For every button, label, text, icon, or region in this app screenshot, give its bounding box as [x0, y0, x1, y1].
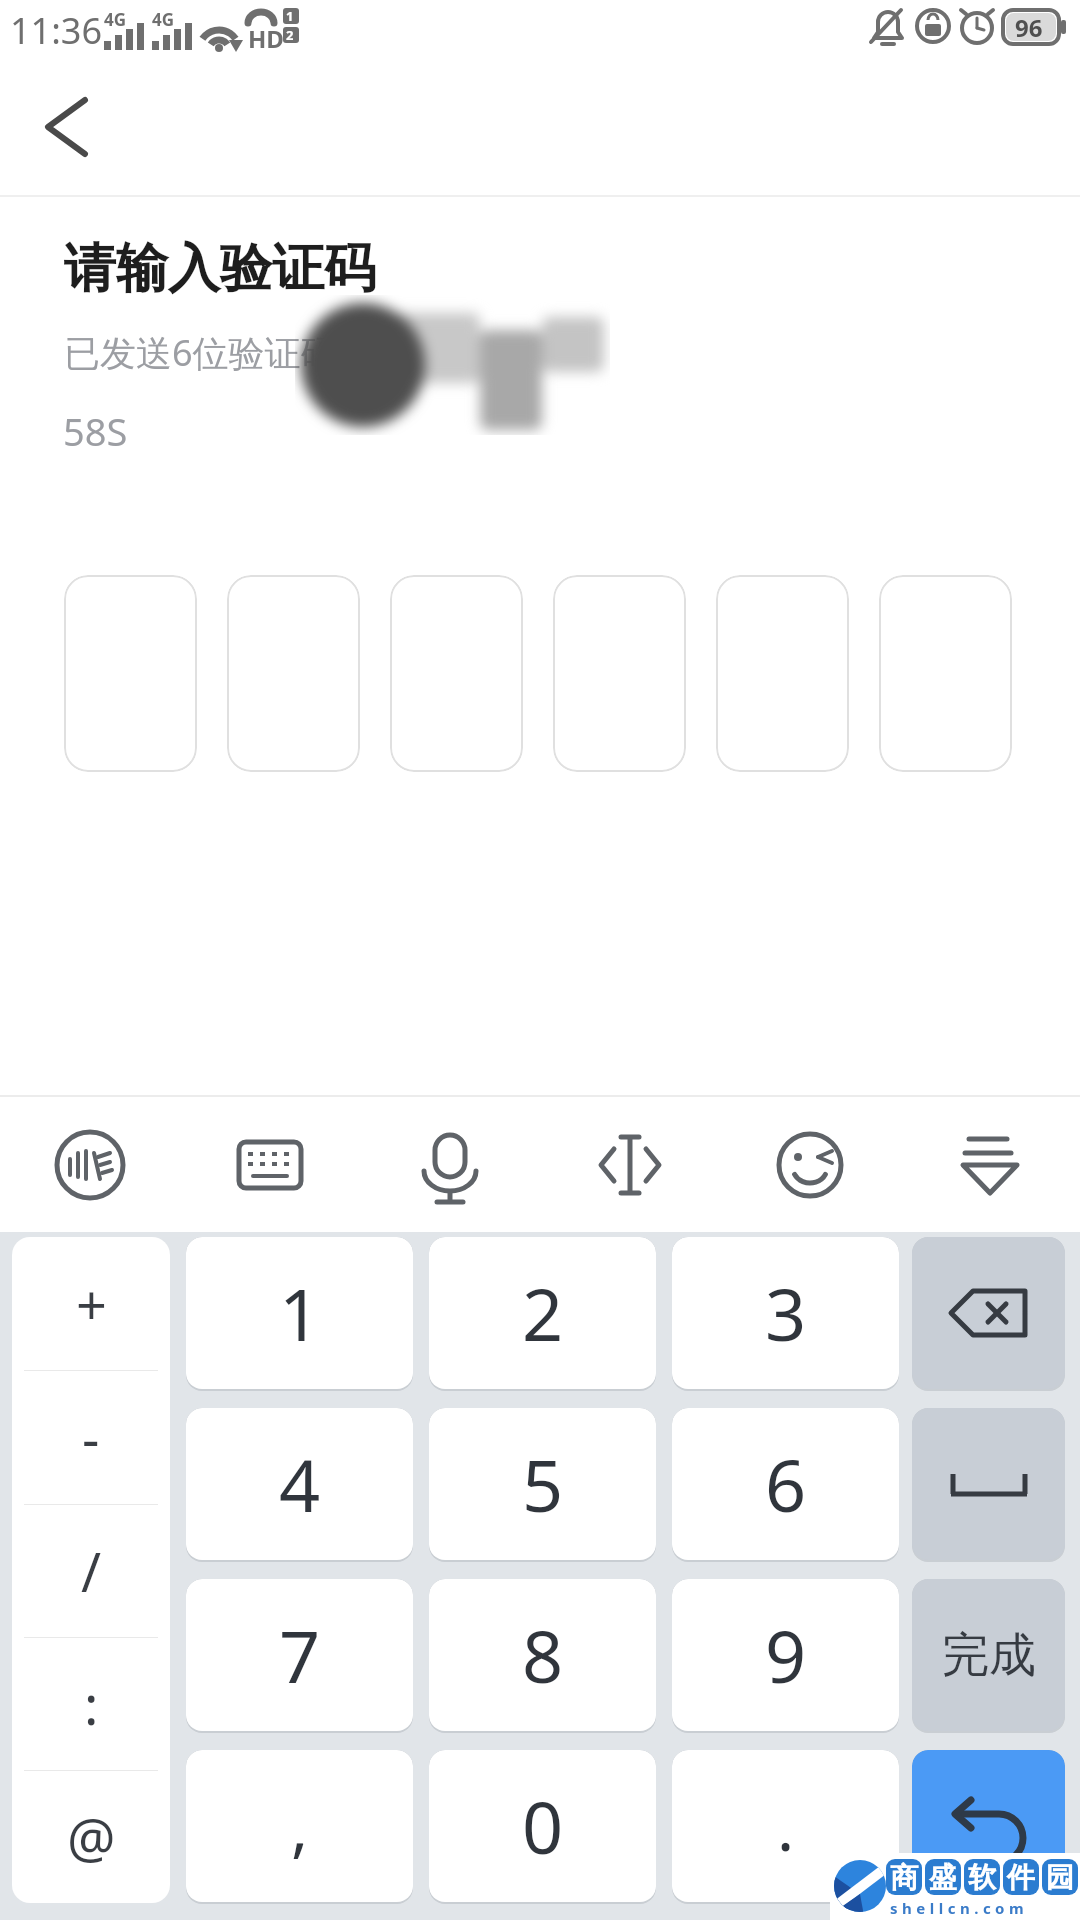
staticText: +	[76, 1267, 107, 1341]
staticText: 2	[522, 1264, 564, 1362]
staticText: 9	[765, 1606, 807, 1704]
button[interactable]: 4	[186, 1408, 413, 1560]
staticText: 5	[522, 1435, 564, 1533]
staticText: 4G	[152, 8, 175, 31]
staticText: 0	[522, 1777, 564, 1875]
button[interactable]	[720, 1097, 900, 1232]
staticText: 58S	[63, 405, 128, 457]
button[interactable]: :	[12, 1638, 170, 1770]
staticText: 完成	[942, 1626, 1036, 1685]
staticText: -	[82, 1401, 100, 1475]
button[interactable]	[716, 575, 849, 772]
button[interactable]: /	[12, 1505, 170, 1637]
staticText: 商	[890, 1860, 918, 1895]
staticText: 4G	[104, 8, 127, 31]
button[interactable]	[540, 1097, 720, 1232]
staticText: 1	[286, 7, 294, 25]
staticText: 2	[286, 26, 294, 44]
button[interactable]: 8	[429, 1579, 656, 1731]
button[interactable]	[879, 575, 1012, 772]
button[interactable]	[180, 1097, 360, 1232]
staticText: 96	[1015, 11, 1043, 44]
staticText: HD	[248, 22, 284, 55]
button[interactable]	[64, 575, 197, 772]
button[interactable]	[360, 1097, 540, 1232]
button[interactable]: 6	[672, 1408, 899, 1560]
staticText: 4	[279, 1435, 321, 1533]
staticText: :	[84, 1667, 99, 1741]
staticText: @	[67, 1800, 116, 1874]
staticText: 8	[522, 1606, 564, 1704]
staticText: 园	[1046, 1860, 1074, 1895]
button[interactable]: 3	[672, 1237, 899, 1389]
staticText: 已发送6位验证码至	[64, 328, 373, 377]
staticText: 6	[765, 1435, 807, 1533]
staticText: 3	[765, 1264, 807, 1362]
staticText: 软	[968, 1860, 996, 1895]
button[interactable]: @	[12, 1771, 170, 1903]
button[interactable]	[227, 575, 360, 772]
staticText: .	[777, 1783, 795, 1870]
staticText: 1	[279, 1264, 321, 1362]
button[interactable]	[912, 1237, 1065, 1389]
staticText: 件	[1007, 1860, 1035, 1895]
button[interactable]: 5	[429, 1408, 656, 1560]
button[interactable]: 1	[186, 1237, 413, 1389]
button[interactable]	[0, 1097, 180, 1232]
button[interactable]: ,	[186, 1750, 413, 1902]
button[interactable]	[30, 85, 100, 165]
button[interactable]	[912, 1750, 1065, 1902]
button[interactable]	[553, 575, 686, 772]
button[interactable]: .	[672, 1750, 899, 1902]
button[interactable]: 7	[186, 1579, 413, 1731]
staticText: 11:36	[10, 6, 103, 55]
staticText: 盛	[929, 1860, 957, 1895]
staticText: /	[81, 1534, 102, 1608]
button[interactable]: -	[12, 1371, 170, 1504]
staticText: ,	[291, 1783, 309, 1870]
button[interactable]	[390, 575, 523, 772]
button[interactable]: 0	[429, 1750, 656, 1902]
button[interactable]	[912, 1408, 1065, 1560]
staticText: 7	[279, 1606, 321, 1704]
staticText: shellcn.com	[890, 1898, 1029, 1918]
button[interactable]	[900, 1097, 1080, 1232]
button[interactable]: 9	[672, 1579, 899, 1731]
button[interactable]: 2	[429, 1237, 656, 1389]
button[interactable]: 完成	[912, 1579, 1065, 1731]
staticText: 请输入验证码	[64, 236, 376, 302]
button[interactable]: +	[12, 1237, 170, 1370]
